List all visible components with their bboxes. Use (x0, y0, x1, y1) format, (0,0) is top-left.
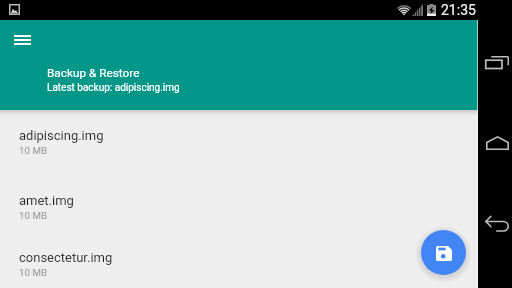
button[interactable]: Home (480, 126, 512, 160)
staticText: amet.img (19, 193, 74, 208)
staticText: Backup & Restore (47, 66, 140, 80)
staticText: 21:35 (441, 2, 476, 18)
staticText: 10 MB (19, 267, 48, 278)
button[interactable]: adipiscing.img (0, 109, 478, 174)
staticText: consectetur.img (19, 250, 113, 265)
staticText: 10 MB (19, 210, 48, 221)
button[interactable]: consectetur.img (0, 239, 478, 288)
button[interactable]: Back (480, 206, 512, 240)
button[interactable]: amet.img (0, 174, 478, 239)
staticText: adipiscing.img (19, 128, 104, 143)
button[interactable]: Recent apps (480, 46, 512, 80)
button[interactable]: Open navigation drawer (6, 23, 39, 56)
button[interactable]: Save backup (421, 230, 466, 275)
staticText: 10 MB (19, 145, 48, 156)
staticText: Latest backup: adipiscing.img (47, 82, 180, 94)
